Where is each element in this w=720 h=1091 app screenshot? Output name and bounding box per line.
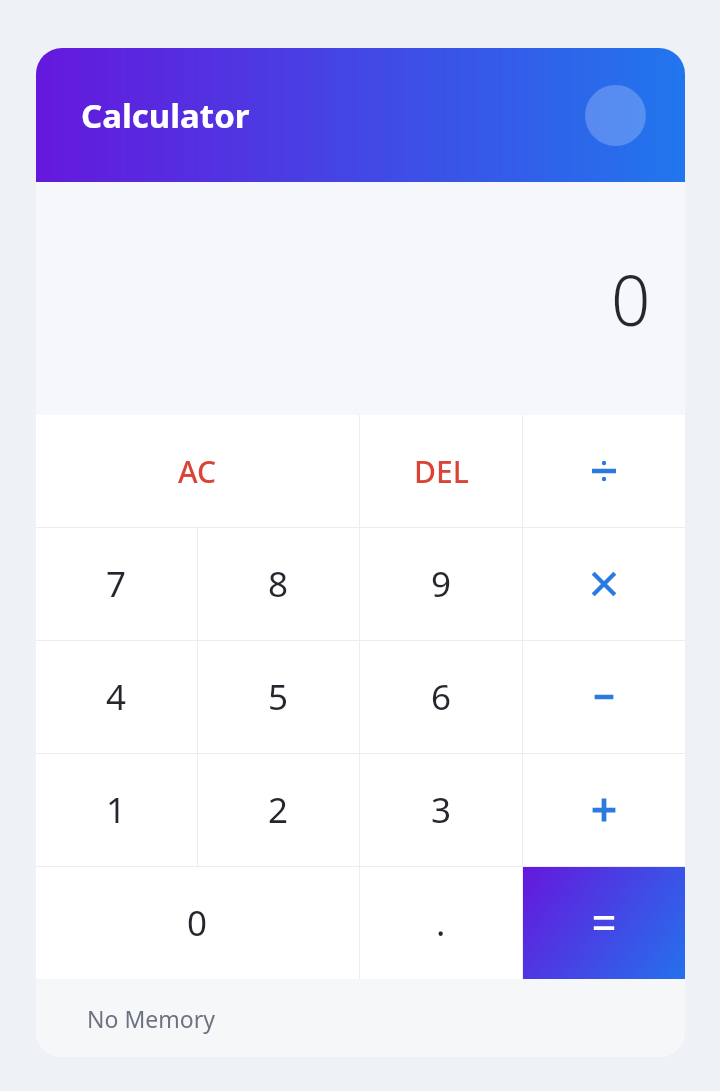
staticText: 2 xyxy=(268,786,289,834)
button[interactable]: 2 xyxy=(198,754,359,866)
button[interactable]: 0 xyxy=(36,867,359,979)
button[interactable]: 1 xyxy=(36,754,197,866)
button[interactable]: Plus xyxy=(523,754,685,866)
staticText: . xyxy=(436,899,446,947)
button[interactable]: Profile xyxy=(585,85,646,146)
staticText: 1 xyxy=(106,786,127,834)
button[interactable]: Multiply xyxy=(523,528,685,640)
staticText: 3 xyxy=(431,786,452,834)
button[interactable]: Equals xyxy=(523,867,685,979)
button[interactable]: 7 xyxy=(36,528,197,640)
staticText: Calculator xyxy=(81,93,250,138)
staticText: AC xyxy=(178,451,217,492)
staticText: 6 xyxy=(431,673,452,721)
button[interactable]: 8 xyxy=(198,528,359,640)
button[interactable]: . xyxy=(360,867,522,979)
button[interactable]: 4 xyxy=(36,641,197,753)
staticText: 0 xyxy=(611,252,651,346)
staticText: DEL xyxy=(414,451,469,492)
button[interactable]: 5 xyxy=(198,641,359,753)
button[interactable]: No Memory xyxy=(36,979,685,1057)
button[interactable]: Divide xyxy=(523,415,685,527)
button[interactable]: 3 xyxy=(360,754,522,866)
button[interactable]: AC xyxy=(36,415,359,527)
staticText: 4 xyxy=(106,673,127,721)
staticText: 8 xyxy=(268,560,289,608)
staticText: 5 xyxy=(268,673,289,721)
button[interactable]: 6 xyxy=(360,641,522,753)
staticText: 9 xyxy=(431,560,452,608)
staticText: 0 xyxy=(187,899,208,947)
staticText: No Memory xyxy=(87,1003,215,1034)
button[interactable]: DEL xyxy=(360,415,522,527)
staticText: 7 xyxy=(106,560,127,608)
button[interactable]: 9 xyxy=(360,528,522,640)
button[interactable]: Minus xyxy=(523,641,685,753)
